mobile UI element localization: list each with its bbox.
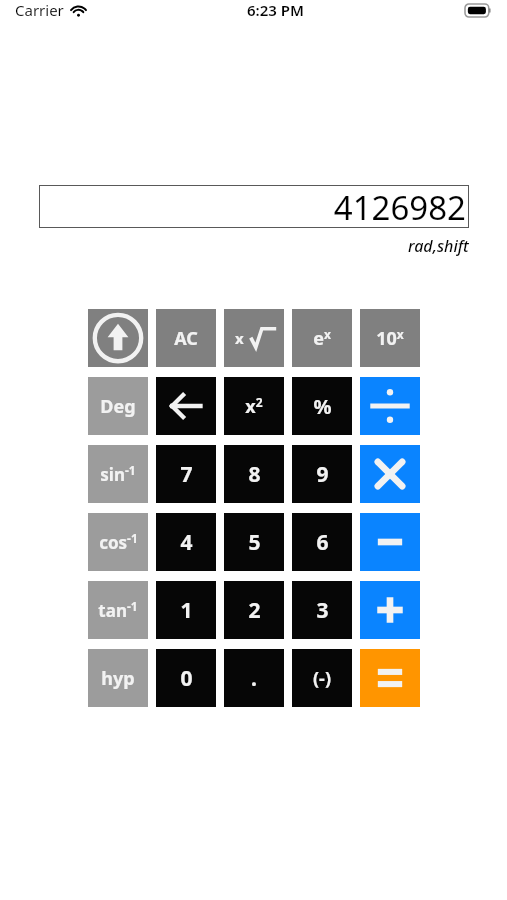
button[interactable]: 2	[224, 581, 284, 639]
button[interactable]: Shift	[88, 309, 148, 367]
button[interactable]: Plus	[360, 581, 420, 639]
staticText: .	[251, 664, 257, 693]
staticText: x	[235, 328, 244, 348]
button[interactable]: Deg	[88, 377, 148, 435]
staticText: x2	[245, 394, 263, 419]
button[interactable]: %	[292, 377, 352, 435]
staticText: 4	[180, 528, 193, 557]
staticText: 7	[180, 460, 193, 489]
staticText: 3	[316, 596, 329, 625]
button[interactable]: ex	[292, 309, 352, 367]
button[interactable]: Divide	[360, 377, 420, 435]
staticText: rad,shift	[408, 235, 469, 257]
staticText: 2	[248, 596, 261, 625]
button[interactable]: .	[224, 649, 284, 707]
staticText: 4126982	[333, 185, 466, 228]
button[interactable]: AC	[156, 309, 216, 367]
button[interactable]: Backspace	[156, 377, 216, 435]
button[interactable]: 0	[156, 649, 216, 707]
button[interactable]: 4126982	[39, 185, 469, 228]
button[interactable]: 10x	[360, 309, 420, 367]
button[interactable]: Equals	[360, 649, 420, 707]
staticText: 1	[180, 596, 193, 625]
staticText: 0	[180, 664, 193, 693]
staticText: 10x	[376, 326, 404, 351]
button[interactable]: hyp	[88, 649, 148, 707]
staticText: AC	[174, 326, 198, 351]
button[interactable]: Minus	[360, 513, 420, 571]
button[interactable]: 6	[292, 513, 352, 571]
button[interactable]: 5	[224, 513, 284, 571]
button[interactable]: x-th root	[224, 309, 284, 367]
staticText: tan-1	[98, 598, 138, 622]
staticText: sin-1	[100, 462, 136, 486]
staticText: ex	[313, 326, 331, 351]
button[interactable]: (-)	[292, 649, 352, 707]
staticText: 5	[248, 528, 261, 557]
staticText: 9	[316, 460, 329, 489]
staticText: Carrier	[15, 0, 64, 20]
button[interactable]: 8	[224, 445, 284, 503]
button[interactable]: 7	[156, 445, 216, 503]
button[interactable]: 4	[156, 513, 216, 571]
staticText: %	[313, 393, 332, 420]
staticText: 6:23 PM	[247, 0, 304, 20]
button[interactable]: 9	[292, 445, 352, 503]
button[interactable]: 3	[292, 581, 352, 639]
button[interactable]: Multiply	[360, 445, 420, 503]
button[interactable]: x2	[224, 377, 284, 435]
button[interactable]: cos-1	[88, 513, 148, 571]
staticText: 6	[316, 528, 329, 557]
button[interactable]: tan-1	[88, 581, 148, 639]
staticText: hyp	[101, 666, 135, 691]
staticText: 8	[248, 460, 261, 489]
staticText: cos-1	[99, 530, 138, 554]
button[interactable]: sin-1	[88, 445, 148, 503]
staticText: Deg	[100, 394, 136, 419]
button[interactable]: 1	[156, 581, 216, 639]
staticText: (-)	[313, 666, 331, 691]
